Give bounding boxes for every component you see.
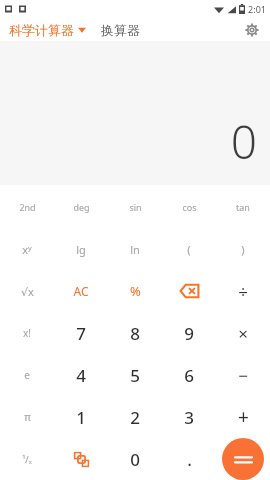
staticText: sin xyxy=(129,201,142,213)
staticText: × xyxy=(238,322,248,345)
staticText: π xyxy=(24,410,31,424)
staticText: 1 xyxy=(76,406,86,429)
button[interactable]: √x xyxy=(0,270,54,312)
staticText: AC xyxy=(73,283,89,299)
staticText: ( xyxy=(187,242,191,257)
button[interactable]: 换算器 xyxy=(99,20,142,40)
staticText: 2nd xyxy=(19,201,36,213)
staticText: x! xyxy=(23,326,31,340)
staticText: ) xyxy=(241,242,245,257)
button[interactable]: History xyxy=(54,438,108,480)
staticText: 科学计算器 xyxy=(9,22,74,38)
button[interactable]: ) xyxy=(216,228,270,270)
button[interactable]: ( xyxy=(162,228,216,270)
staticText: 2:01 xyxy=(248,3,266,15)
staticText: 4 xyxy=(76,364,86,387)
button[interactable]: x! xyxy=(0,312,54,354)
staticText: 9 xyxy=(184,322,194,345)
button[interactable]: 2 xyxy=(108,396,162,438)
button[interactable]: 1 xyxy=(54,396,108,438)
staticText: ¹/ₓ xyxy=(22,453,32,465)
staticText: deg xyxy=(73,201,90,213)
staticText: cos xyxy=(182,201,197,213)
button[interactable]: Backspace xyxy=(162,270,216,312)
button[interactable]: 3 xyxy=(162,396,216,438)
button[interactable]: 4 xyxy=(54,354,108,396)
button[interactable]: 9 xyxy=(162,312,216,354)
staticText: 0 xyxy=(130,448,140,471)
staticText: % xyxy=(130,282,141,300)
button[interactable]: 8 xyxy=(108,312,162,354)
button[interactable]: sin xyxy=(108,185,162,228)
button[interactable]: Equals xyxy=(216,438,270,480)
staticText: 换算器 xyxy=(101,22,140,38)
button[interactable]: 科学计算器 xyxy=(7,20,88,40)
staticText: 3 xyxy=(184,406,194,429)
button[interactable]: − xyxy=(216,354,270,396)
button[interactable]: × xyxy=(216,312,270,354)
button[interactable]: lg xyxy=(54,228,108,270)
button[interactable]: Settings xyxy=(242,20,262,40)
staticText: lg xyxy=(76,242,86,257)
staticText: 8 xyxy=(130,322,140,345)
button[interactable]: ¹/ₓ xyxy=(0,438,54,480)
button[interactable]: cos xyxy=(162,185,216,228)
staticText: √x xyxy=(21,284,34,299)
staticText: ln xyxy=(130,242,140,257)
button[interactable]: 2nd xyxy=(0,185,54,228)
button[interactable]: 5 xyxy=(108,354,162,396)
button[interactable]: tan xyxy=(216,185,270,228)
button[interactable]: xʸ xyxy=(0,228,54,270)
staticText: ÷ xyxy=(238,280,248,303)
button[interactable]: 7 xyxy=(54,312,108,354)
staticText: 2 xyxy=(130,406,140,429)
staticText: − xyxy=(238,364,248,387)
button[interactable]: ÷ xyxy=(216,270,270,312)
staticText: e xyxy=(24,368,30,382)
button[interactable]: % xyxy=(108,270,162,312)
button[interactable]: 0 xyxy=(108,438,162,480)
staticText: tan xyxy=(236,201,250,213)
button[interactable]: deg xyxy=(54,185,108,228)
button[interactable]: . xyxy=(162,438,216,480)
button[interactable]: AC xyxy=(54,270,108,312)
staticText: 6 xyxy=(184,364,194,387)
staticText: . xyxy=(187,448,192,471)
staticText: 5 xyxy=(130,364,140,387)
button[interactable]: + xyxy=(216,396,270,438)
button[interactable]: Equals xyxy=(222,438,264,480)
button[interactable]: π xyxy=(0,396,54,438)
button[interactable]: 6 xyxy=(162,354,216,396)
staticText: 0 xyxy=(230,110,257,173)
button[interactable]: ln xyxy=(108,228,162,270)
button[interactable]: e xyxy=(0,354,54,396)
staticText: 7 xyxy=(76,322,86,345)
staticText: + xyxy=(238,404,249,430)
staticText: xʸ xyxy=(22,242,32,257)
